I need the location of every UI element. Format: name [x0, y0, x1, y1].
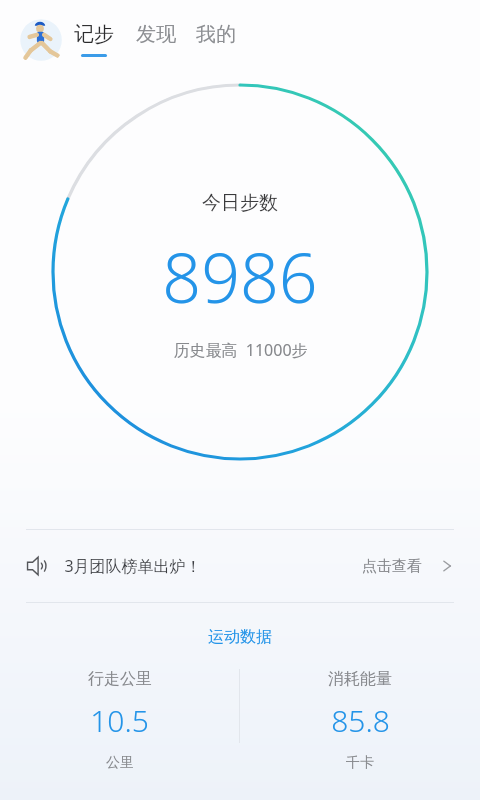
button[interactable]: Announcement	[0, 530, 480, 602]
staticText: 85.8	[331, 700, 390, 741]
staticText: 消耗能量	[328, 669, 392, 689]
button[interactable]: 行走公里	[0, 669, 239, 772]
other: Announcement	[26, 555, 48, 577]
staticText: 记步	[74, 22, 114, 47]
staticText: 行走公里	[88, 669, 152, 689]
staticText: 发现	[136, 22, 176, 47]
button[interactable]: 消耗能量	[240, 669, 480, 772]
staticText: 今日步数	[202, 191, 278, 215]
staticText: 3月团队榜单出炉！	[64, 555, 202, 577]
staticText: 我的	[196, 22, 236, 47]
staticText: 千卡	[346, 754, 374, 772]
button[interactable]: 发现	[130, 18, 182, 61]
staticText: 8986	[162, 230, 318, 323]
button[interactable]: 记步	[68, 18, 120, 61]
staticText: 公里	[106, 754, 134, 772]
staticText: 运动数据	[0, 627, 480, 647]
staticText: 历史最高 11000步	[173, 339, 308, 361]
staticText: 点击查看	[362, 557, 422, 576]
other: Open	[440, 559, 454, 573]
button[interactable]: 我的	[190, 18, 242, 61]
staticText: 10.5	[90, 700, 149, 741]
button[interactable]: Profile avatar	[14, 13, 66, 65]
